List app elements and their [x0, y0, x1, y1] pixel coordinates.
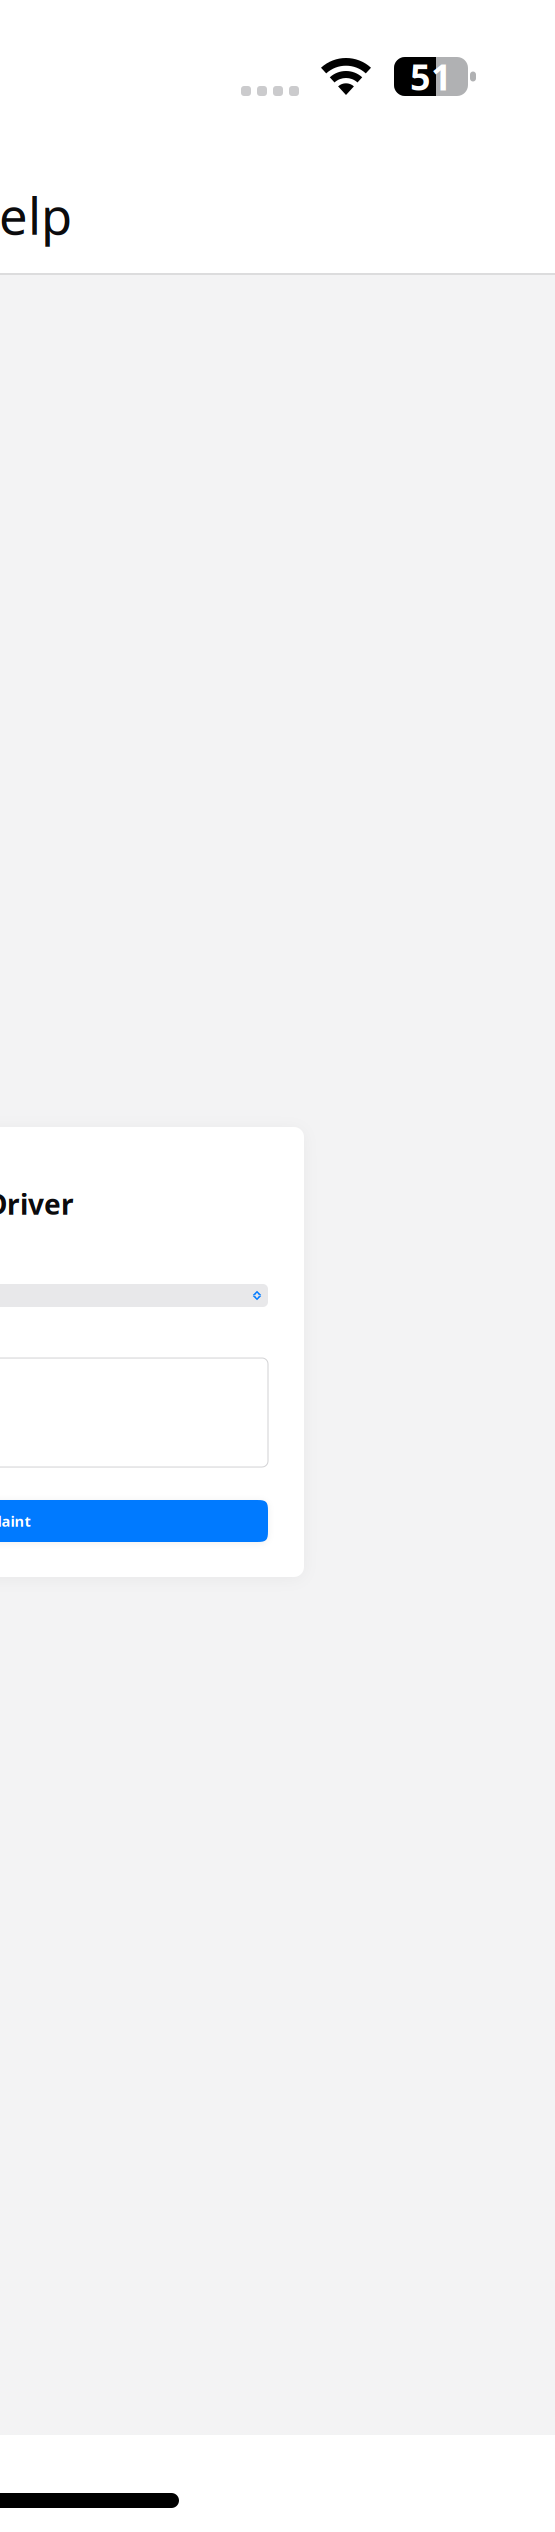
staticText: Report an Issue with a Driver: [0, 1185, 74, 1223]
staticText: Help: [0, 181, 72, 249]
button[interactable]: Issue type: [0, 1284, 268, 1307]
staticText: Submit Complaint: [0, 1511, 30, 1531]
button[interactable]: Submit Complaint: [0, 1500, 268, 1542]
staticText: 51: [410, 53, 452, 100]
